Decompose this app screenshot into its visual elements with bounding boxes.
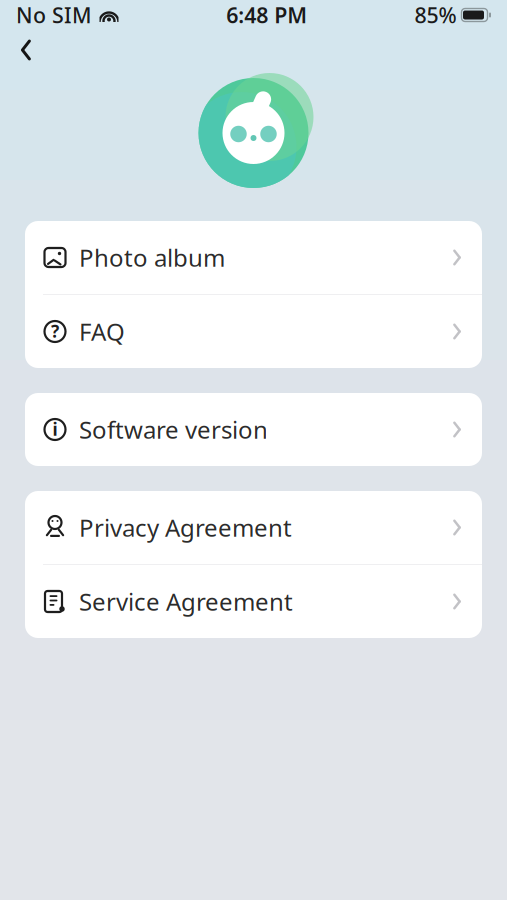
staticText: 85% [414, 1, 456, 29]
staticText: 6:48 PM [226, 1, 307, 29]
button[interactable]: ? [25, 295, 482, 368]
staticText: ? [51, 319, 59, 342]
button[interactable]: Back [4, 30, 48, 70]
staticText: FAQ [79, 316, 125, 347]
button[interactable]: i [25, 393, 482, 466]
staticText: i [52, 417, 57, 440]
button[interactable]: Photo album [25, 221, 482, 294]
button[interactable]: Privacy Agreement [25, 491, 482, 564]
staticText: Software version [79, 414, 268, 445]
staticText: Service Agreement [79, 586, 293, 617]
staticText: Privacy Agreement [79, 512, 292, 543]
staticText: Photo album [79, 242, 225, 273]
button[interactable]: Service Agreement [25, 565, 482, 638]
staticText: No SIM [16, 1, 92, 29]
